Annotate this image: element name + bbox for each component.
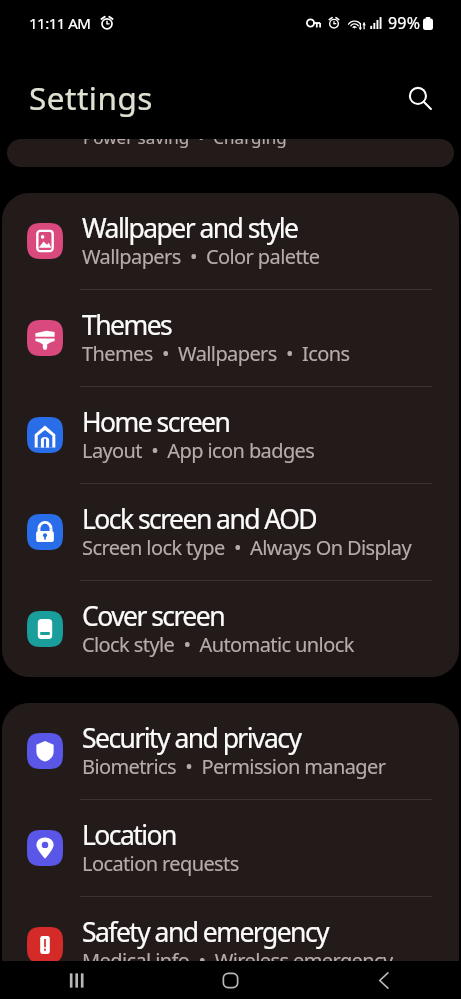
button[interactable]: Home screen	[2, 387, 459, 483]
button[interactable]: Cover screen	[2, 581, 459, 677]
button[interactable]: Security and privacy	[2, 703, 459, 799]
staticText: Location	[82, 817, 176, 853]
staticText: Safety and emergency	[82, 914, 329, 950]
button[interactable]: Home	[153, 961, 307, 999]
button[interactable]: Search	[396, 74, 444, 122]
staticText: Clock style • Automatic unlock	[82, 631, 354, 658]
button[interactable]: Wallpaper and style	[2, 193, 459, 289]
button[interactable]: Location	[2, 800, 459, 896]
staticText: Screen lock type • Always On Display	[82, 534, 412, 561]
button[interactable]: Themes	[2, 290, 459, 386]
staticText: Wallpapers • Color palette	[82, 243, 320, 270]
staticText: Wallpaper and style	[82, 210, 298, 246]
staticText: Lock screen and AOD	[82, 501, 317, 537]
staticText: Settings	[29, 76, 153, 119]
staticText: Location requests	[82, 850, 239, 877]
staticText: Home screen	[82, 404, 230, 440]
staticText: Power saving • Charging	[83, 139, 287, 149]
staticText: Themes	[82, 307, 172, 343]
button[interactable]: Recent apps	[0, 961, 153, 999]
staticText: 11:11 AM	[29, 13, 91, 33]
staticText: Layout • App icon badges	[82, 437, 315, 464]
staticText: Medical info • Wireless emergency	[82, 947, 393, 974]
staticText: Cover screen	[82, 598, 224, 634]
staticText: Themes • Wallpapers • Icons	[82, 340, 350, 367]
button[interactable]: Lock screen and AOD	[2, 484, 459, 580]
staticText: Security and privacy	[82, 720, 301, 756]
button[interactable]: Back	[307, 961, 461, 999]
staticText: Biometrics • Permission manager	[82, 753, 386, 780]
staticText: 99%	[388, 12, 421, 34]
button[interactable]: Safety and emergency	[2, 897, 459, 993]
button[interactable]: Power saving • Charging	[7, 139, 454, 167]
